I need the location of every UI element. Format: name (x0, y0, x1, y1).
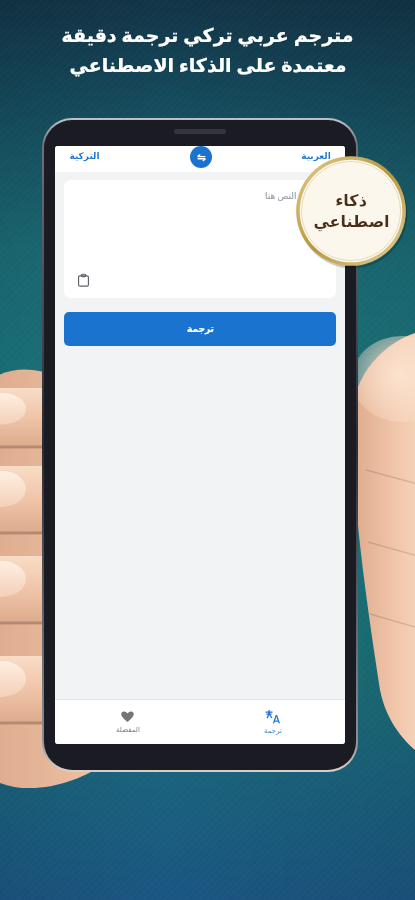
button[interactable]: Paste from clipboard (72, 269, 94, 291)
button[interactable]: ترجمة (200, 700, 345, 744)
staticText: المفضلة (116, 726, 140, 734)
staticText: ترجمة (187, 324, 214, 334)
staticText: اصطناعي (313, 212, 390, 231)
button[interactable]: المفضلة (55, 700, 200, 744)
staticText: التركية (69, 151, 100, 161)
staticText: العربية (301, 151, 331, 161)
staticText: ذكاء (335, 191, 367, 210)
button[interactable]: Swap languages (190, 146, 212, 168)
staticText: معتمدة على الذكاء الاصطناعي (69, 52, 347, 78)
staticText: ترجمة (264, 727, 282, 735)
button[interactable]: ترجمة (64, 312, 336, 346)
button[interactable]: أدخل النص هنا... (64, 180, 336, 298)
staticText: أدخل النص هنا... (265, 189, 325, 201)
staticText: مترجم عربي تركي ترجمة دقيقة (61, 22, 354, 48)
button[interactable]: العربية (301, 151, 331, 172)
button[interactable]: التركية (69, 151, 100, 172)
